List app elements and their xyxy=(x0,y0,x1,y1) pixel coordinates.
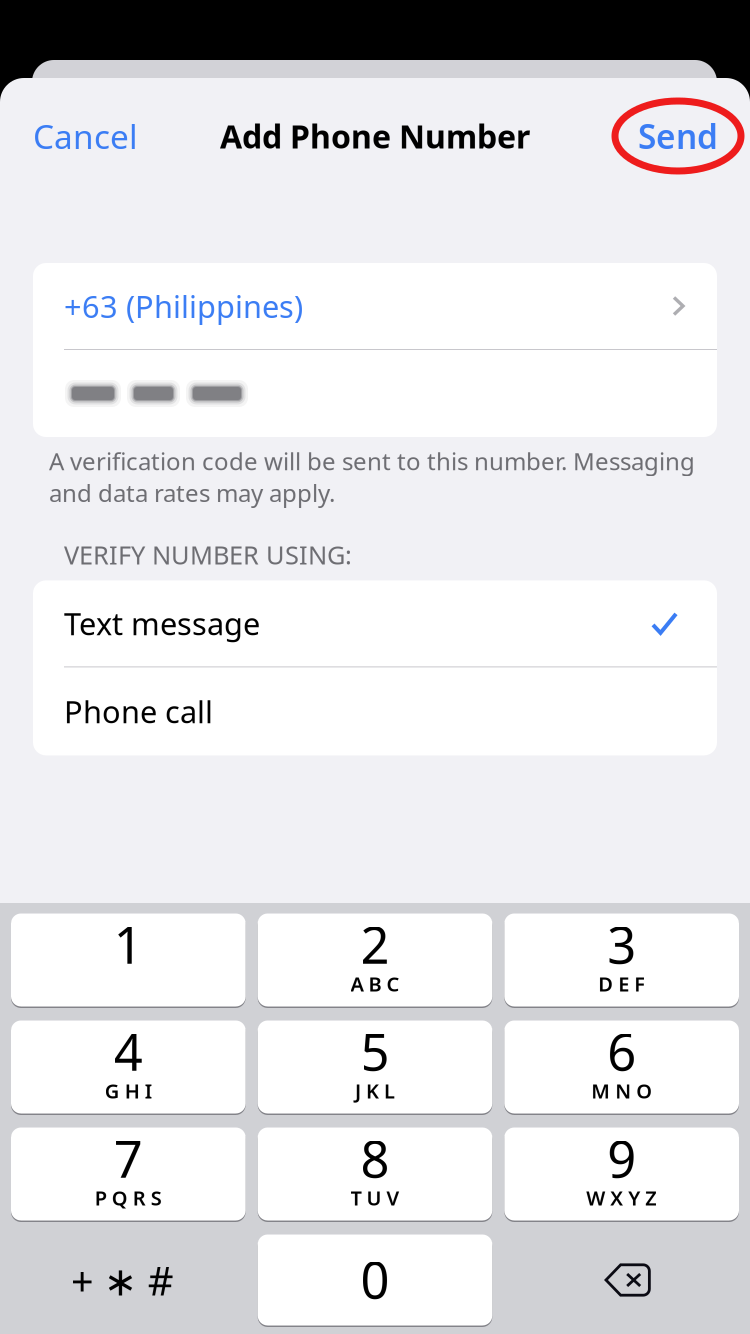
staticText: D E F xyxy=(598,970,645,997)
staticText: 3 xyxy=(607,910,636,978)
button[interactable]: Send xyxy=(615,101,741,171)
staticText: Send xyxy=(638,114,718,158)
button[interactable]: 5 xyxy=(258,1020,492,1113)
button[interactable]: 2 xyxy=(258,913,492,1006)
button[interactable]: 6 xyxy=(504,1020,739,1113)
staticText: 2 xyxy=(360,910,389,978)
staticText: Cancel xyxy=(33,114,138,158)
button[interactable]: 9 xyxy=(504,1127,739,1220)
button[interactable]: Delete xyxy=(504,1234,739,1325)
staticText: J K L xyxy=(355,1077,395,1104)
button[interactable]: 0 xyxy=(258,1234,492,1325)
button[interactable]: +63 (Philippines) xyxy=(33,263,717,349)
button[interactable]: 8 xyxy=(258,1127,492,1220)
staticText: Text message xyxy=(64,603,260,644)
button[interactable]: 1 xyxy=(11,913,246,1006)
staticText: W X Y Z xyxy=(586,1184,657,1211)
staticText: T U V xyxy=(350,1184,399,1211)
staticText: 7 xyxy=(114,1124,143,1192)
staticText: + ∗ # xyxy=(71,1253,174,1306)
staticText: 9 xyxy=(607,1124,636,1192)
staticText: 1 xyxy=(114,910,143,978)
staticText: 6 xyxy=(607,1017,636,1085)
button[interactable]: 4 xyxy=(11,1020,246,1113)
button[interactable]: 3 xyxy=(504,913,739,1006)
staticText: VERIFY NUMBER USING: xyxy=(64,538,352,571)
staticText: A B C xyxy=(350,970,399,997)
staticText: 0 xyxy=(360,1245,389,1313)
staticText: 5 xyxy=(360,1017,389,1085)
staticText: G H I xyxy=(105,1077,152,1104)
button[interactable]: Cancel xyxy=(33,106,138,166)
staticText: 4 xyxy=(114,1017,143,1085)
button[interactable]: Symbols xyxy=(11,1234,246,1325)
button[interactable]: 7 xyxy=(11,1127,246,1220)
button[interactable]: Phone call xyxy=(33,667,717,755)
staticText: Phone call xyxy=(64,691,213,732)
staticText: 8 xyxy=(360,1124,389,1192)
staticText: A verification code will be sent to this… xyxy=(49,445,695,509)
button[interactable]: Text message xyxy=(33,580,717,666)
staticText: +63 (Philippines) xyxy=(64,286,303,326)
staticText: P Q R S xyxy=(95,1184,162,1211)
staticText: M N O xyxy=(591,1077,652,1104)
staticText: Add Phone Number xyxy=(220,115,530,157)
